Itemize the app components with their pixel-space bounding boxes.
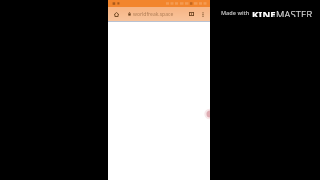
staticText: KINE — [252, 8, 276, 17]
button[interactable]: Tabs — [185, 7, 197, 21]
button[interactable]: Floating action button — [202, 110, 210, 118]
button[interactable]: More options — [199, 7, 207, 21]
staticText: Made with — [221, 9, 250, 16]
staticText: MASTER — [276, 8, 313, 17]
staticText: worldfreak.space — [133, 11, 174, 18]
button[interactable]: Home — [111, 7, 122, 21]
